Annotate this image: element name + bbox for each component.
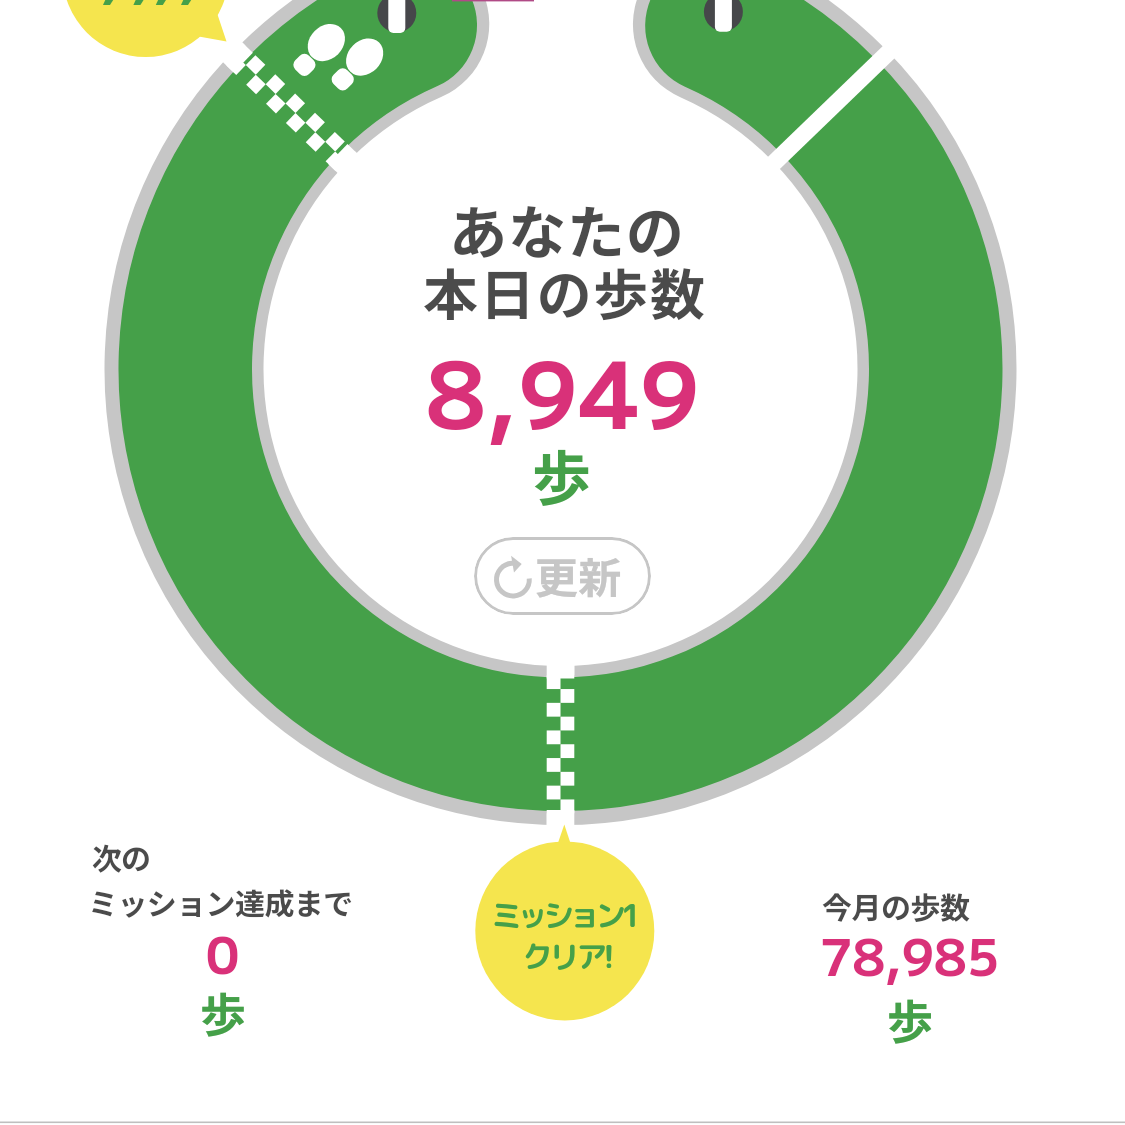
staticText: 歩: [200, 979, 246, 1046]
staticText: 本日の歩数: [423, 251, 707, 330]
staticText: あなたの: [449, 186, 685, 270]
staticText: ミッション1: [491, 894, 636, 937]
staticText: ミッション達成まで: [88, 880, 353, 923]
staticText: 8,949: [426, 322, 701, 455]
staticText: 78,985: [820, 918, 1000, 991]
staticText: 今月の歩数: [822, 884, 970, 927]
staticText: 歩: [532, 432, 592, 517]
staticText: 次の: [92, 835, 150, 878]
other: Refresh: [492, 557, 536, 601]
staticText: 歩: [887, 985, 934, 1052]
button[interactable]: Refresh: [474, 537, 651, 615]
staticText: 更新: [535, 544, 622, 606]
staticText: 0: [206, 914, 240, 988]
staticText: クリア!: [522, 935, 611, 978]
